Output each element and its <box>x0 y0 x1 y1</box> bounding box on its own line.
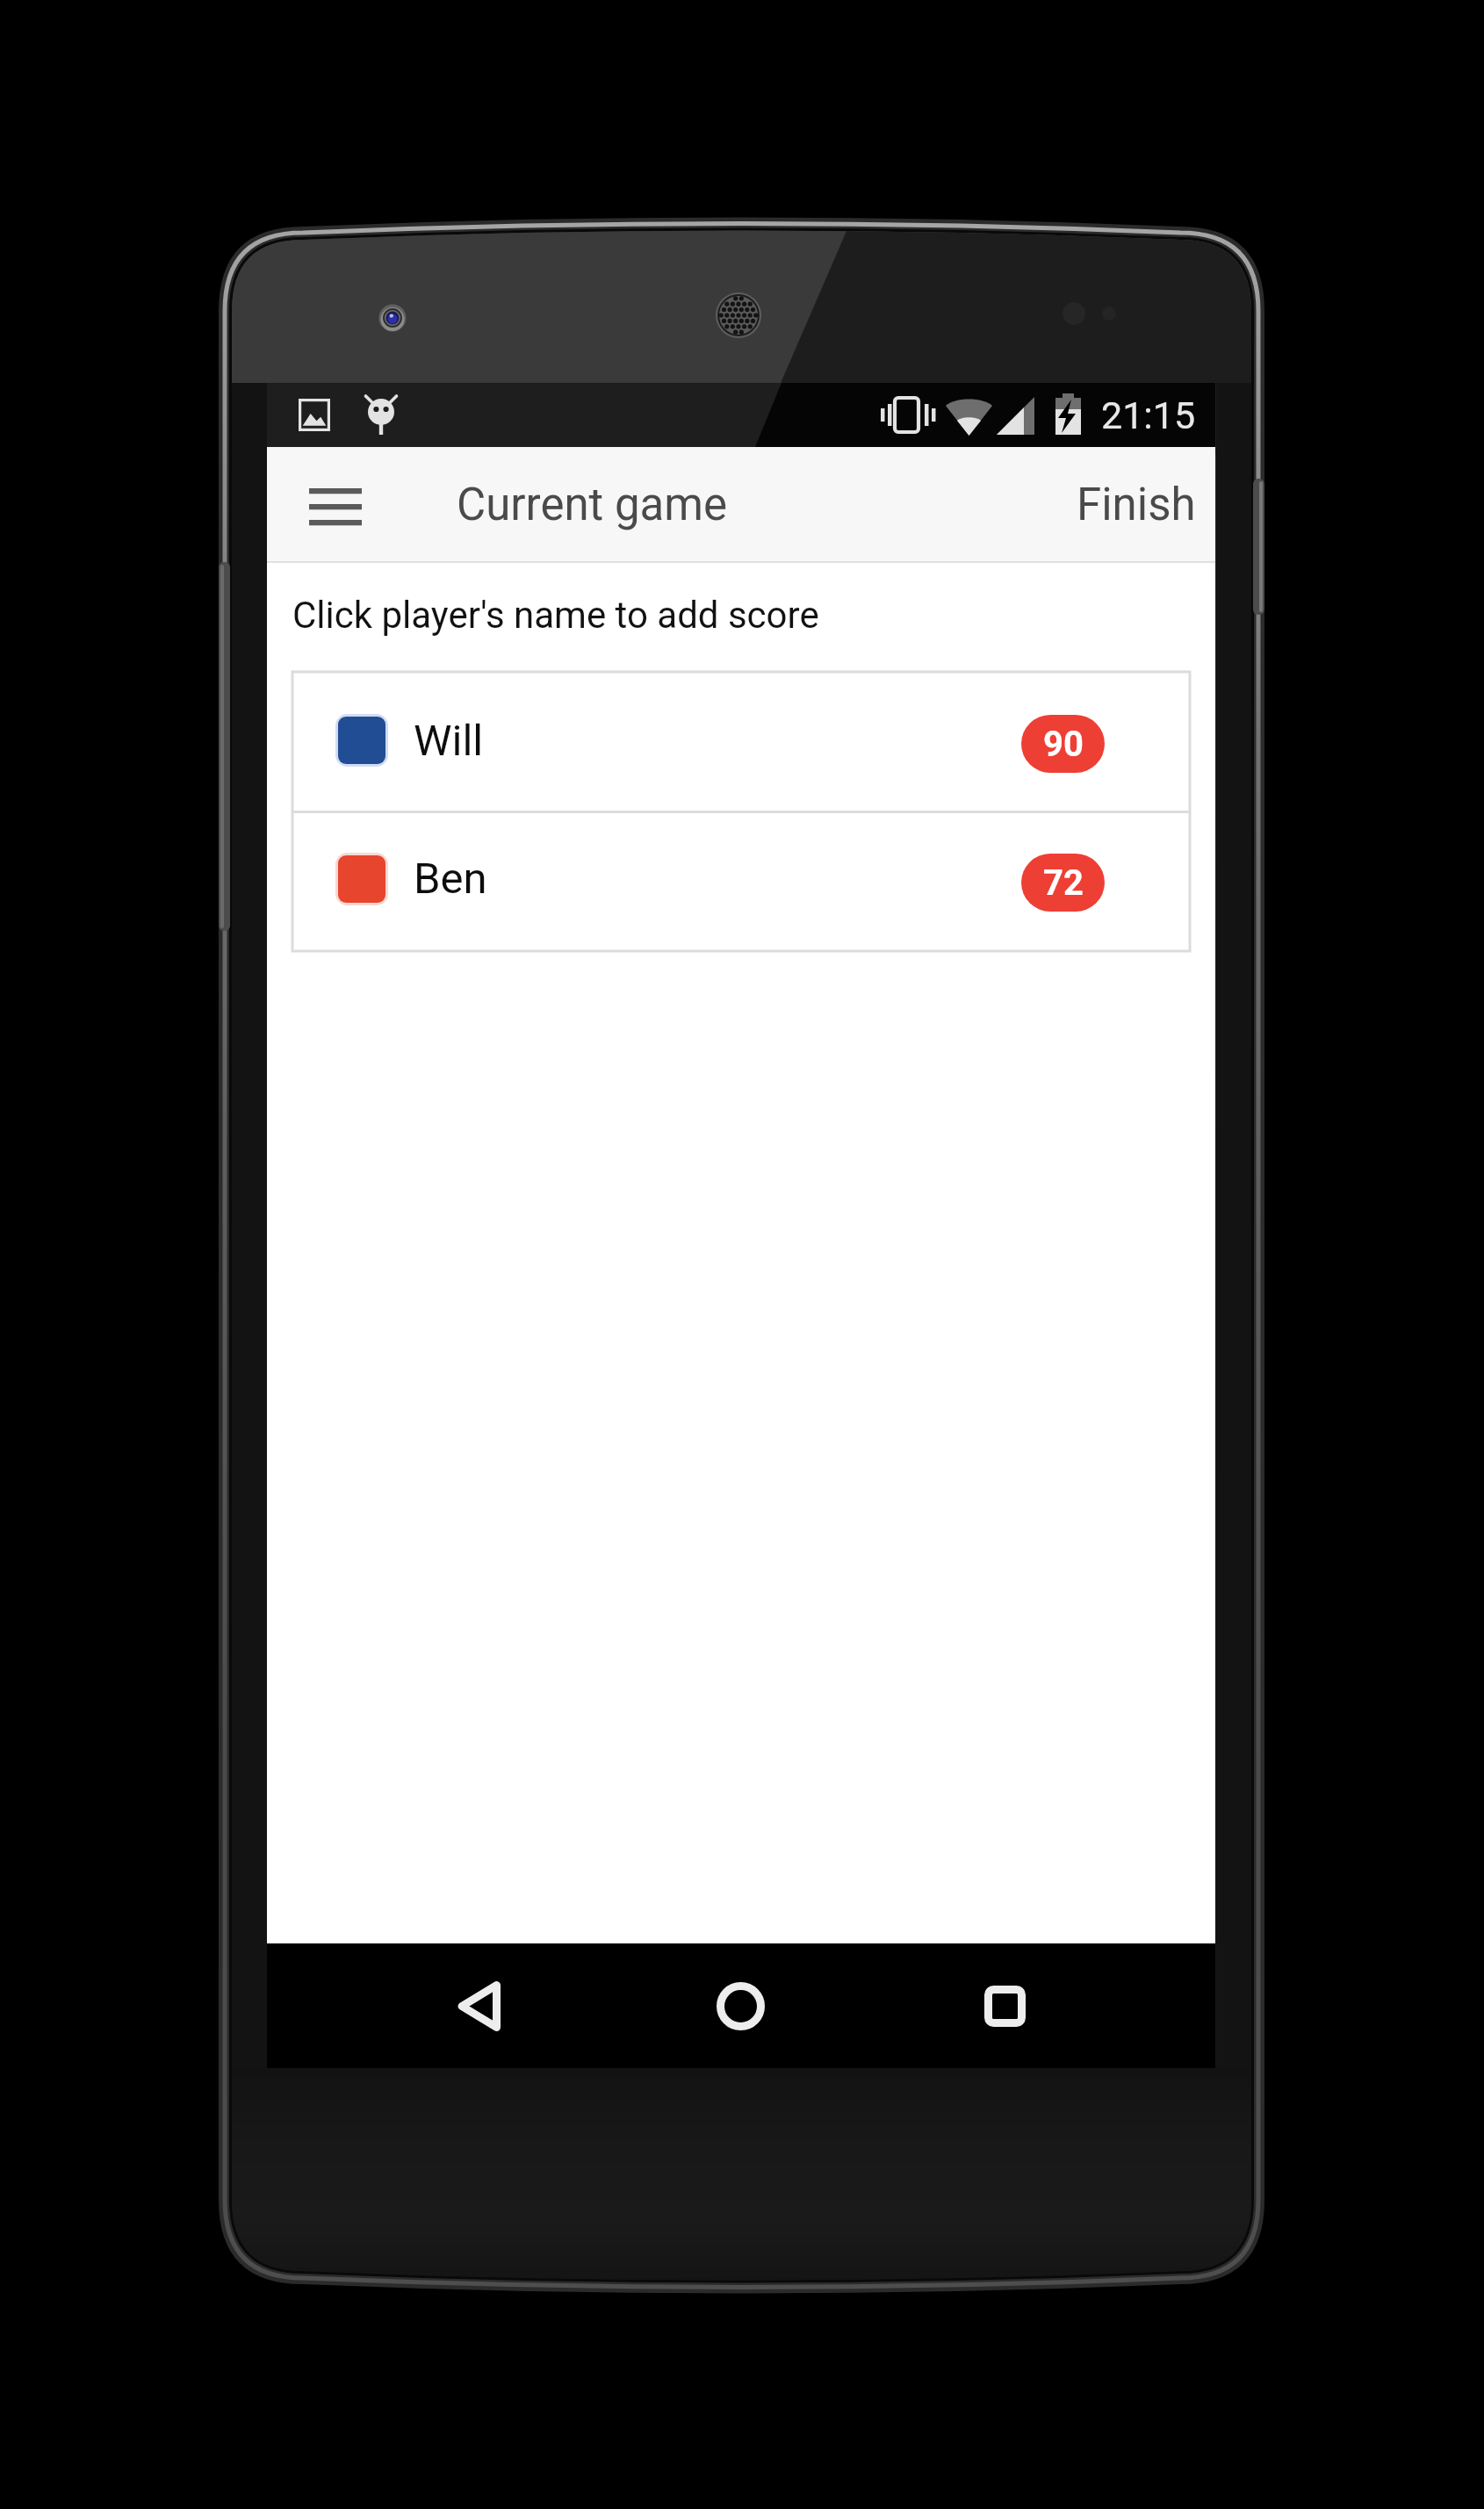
staticText: Current game <box>457 479 728 531</box>
button[interactable]: Ben <box>292 813 1190 951</box>
staticText: Ben <box>414 854 487 904</box>
staticText: Click player's name to add score <box>292 594 819 637</box>
button[interactable]: Recent apps <box>934 1953 1075 2058</box>
staticText: 90 <box>1043 724 1084 765</box>
staticText: Will <box>414 716 484 766</box>
staticText: 21:15 <box>1101 393 1196 437</box>
button[interactable]: Back <box>408 1953 549 2058</box>
button[interactable]: Open navigation drawer <box>288 459 383 554</box>
staticText: 72 <box>1043 862 1084 904</box>
button[interactable]: Will <box>292 672 1190 811</box>
button[interactable]: Finish <box>1053 447 1215 563</box>
staticText: Finish <box>1077 479 1196 531</box>
button[interactable]: Home <box>670 1953 810 2058</box>
